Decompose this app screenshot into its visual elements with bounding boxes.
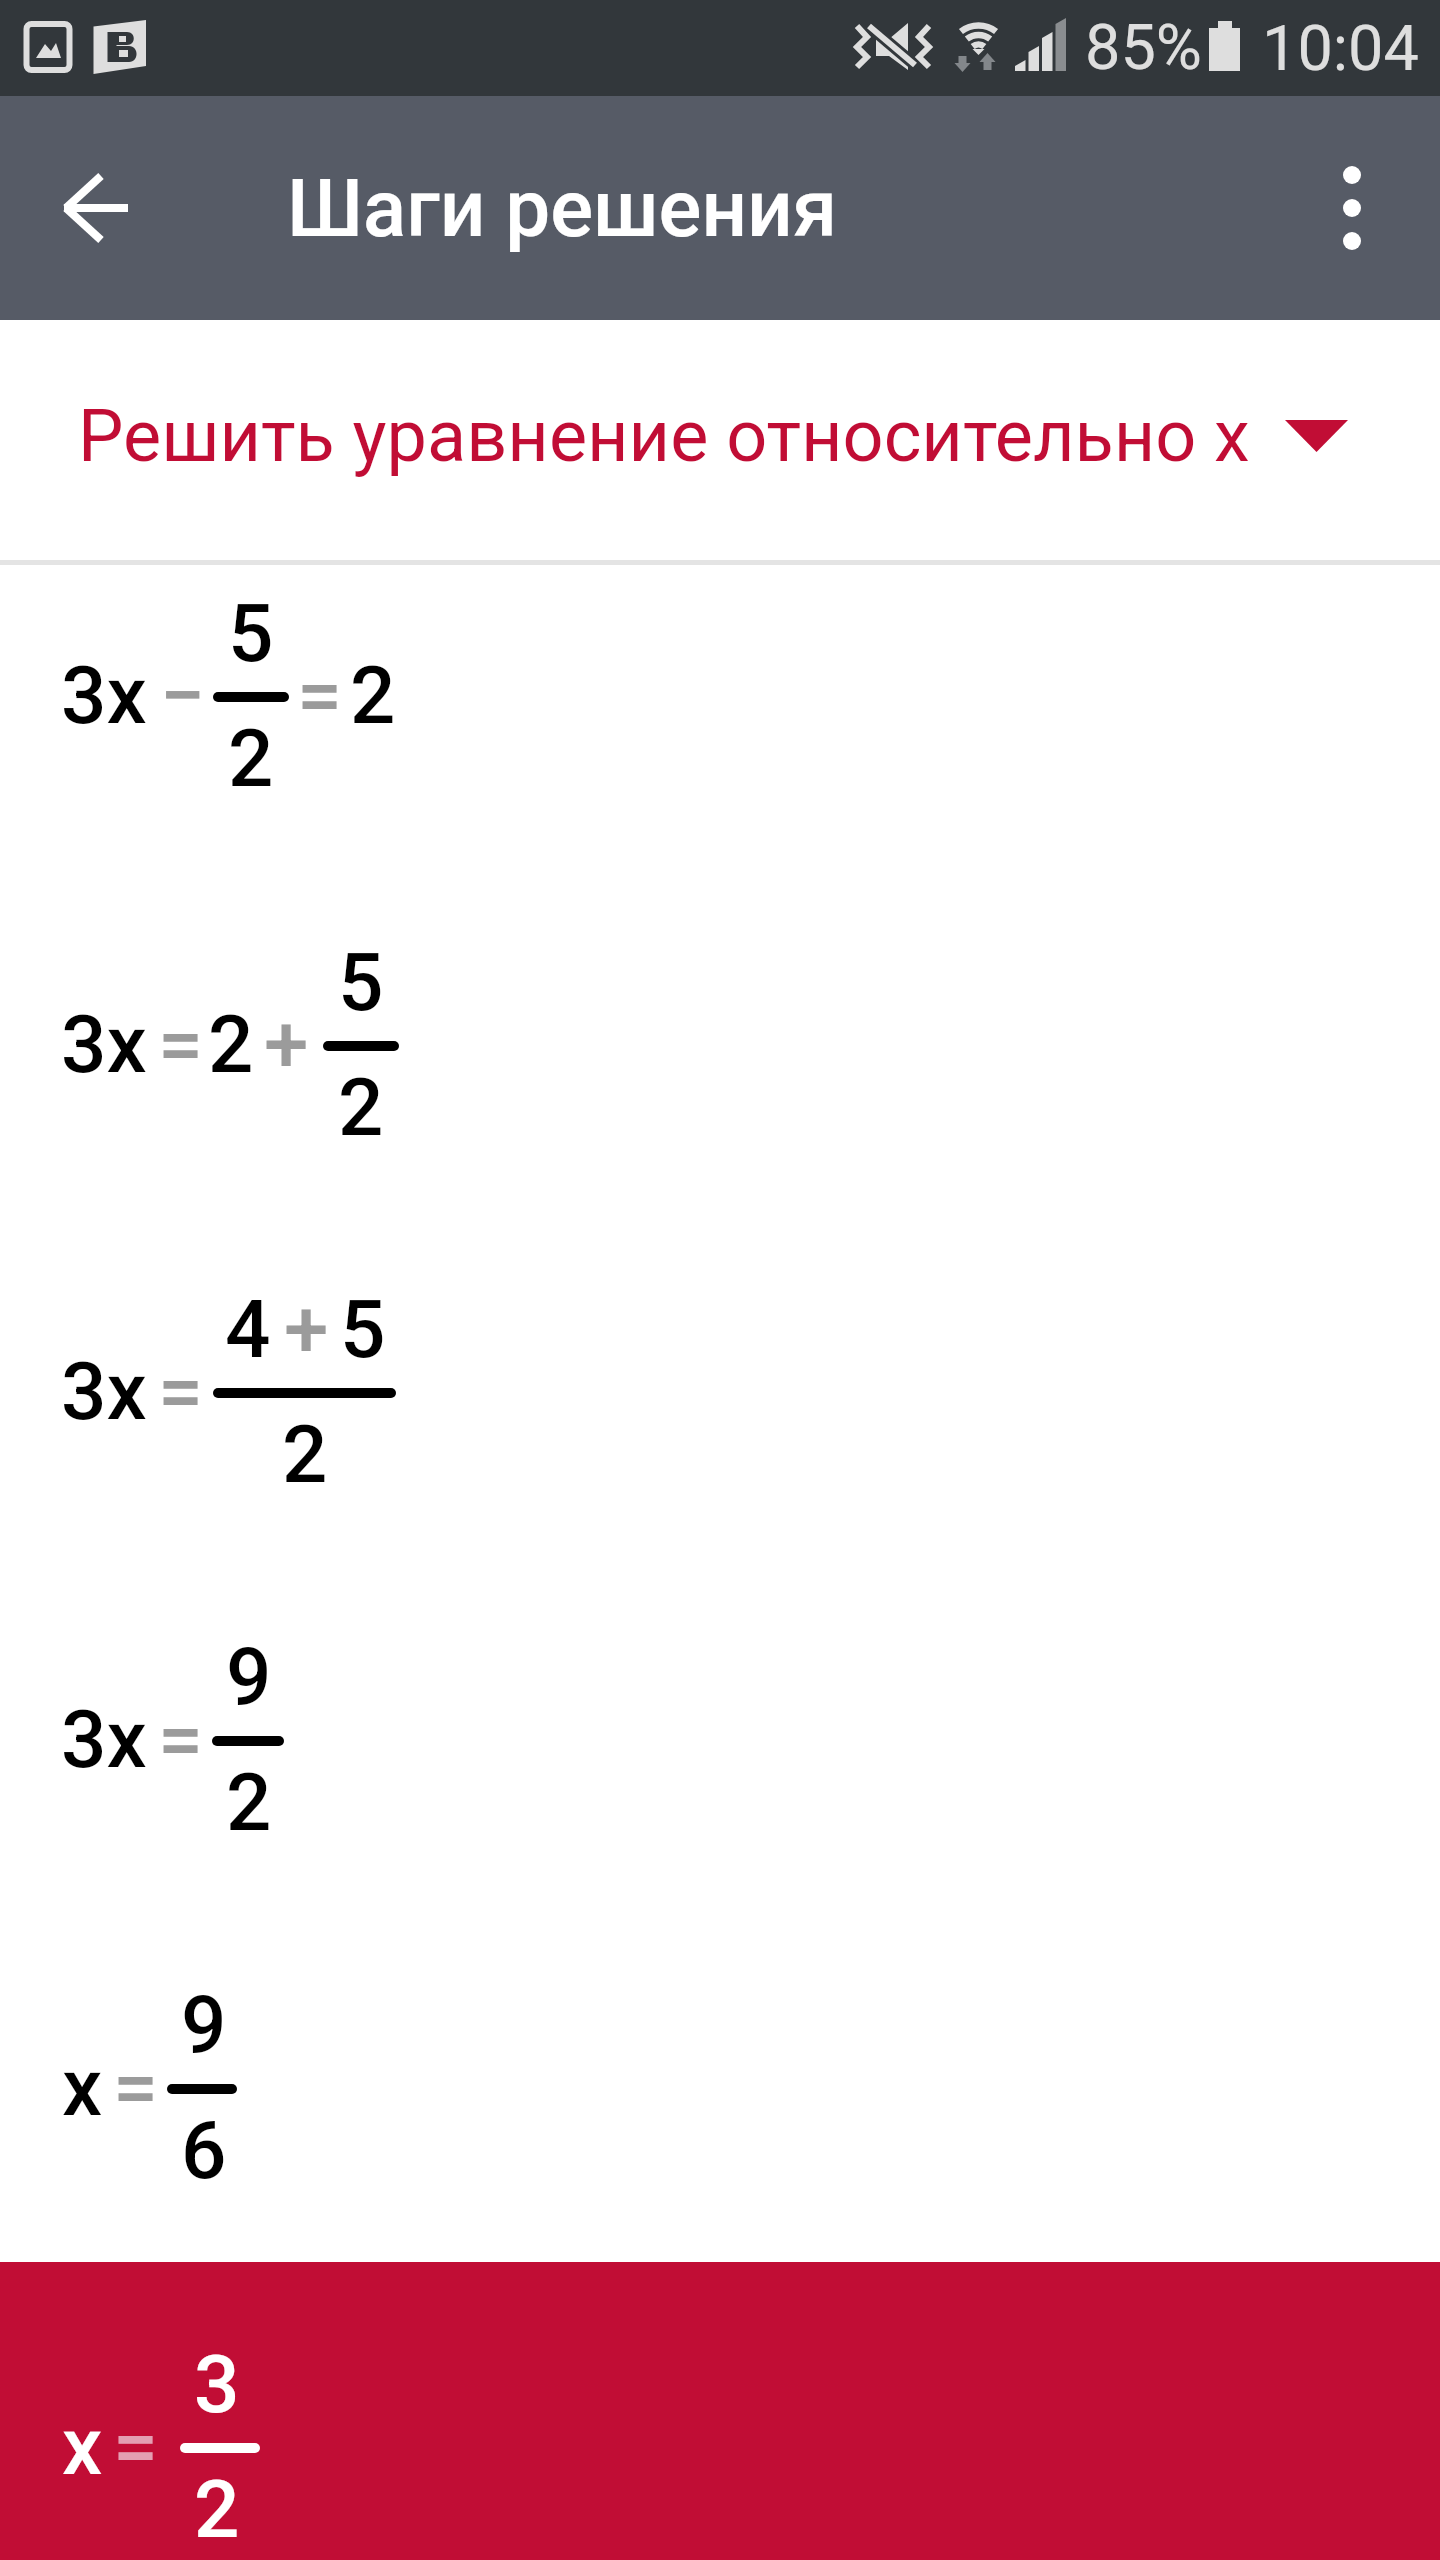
staticText: +	[284, 1283, 329, 1377]
staticText: =	[158, 1693, 203, 1787]
staticText: 3	[194, 2338, 240, 2432]
staticText: 5	[228, 587, 274, 681]
button[interactable]: Решить уравнение относительно x	[0, 320, 1440, 560]
staticText: 3x	[61, 998, 147, 1092]
button[interactable]: 3x	[0, 562, 1440, 910]
staticText: 9	[226, 1631, 272, 1725]
button[interactable]: 3x	[0, 1258, 1440, 1606]
staticText: 4	[225, 1283, 271, 1377]
staticText: 2	[350, 649, 396, 743]
button[interactable]: Back	[42, 152, 154, 264]
staticText: 6	[181, 2104, 227, 2198]
button[interactable]: 3x	[0, 910, 1440, 1258]
staticText: 2	[208, 998, 254, 1092]
staticText: =	[297, 649, 342, 743]
button[interactable]: More options	[1296, 152, 1408, 264]
staticText: 5	[338, 936, 384, 1030]
staticText: 10:04	[1262, 12, 1419, 86]
staticText: 5	[340, 1283, 386, 1377]
staticText: +	[264, 998, 309, 1092]
staticText: =	[113, 2041, 158, 2135]
staticText: 2	[226, 1756, 272, 1850]
staticText: 3x	[61, 1345, 147, 1439]
staticText: 2	[228, 712, 274, 806]
button[interactable]: 3x	[0, 1606, 1440, 1954]
staticText: =	[158, 998, 203, 1092]
staticText: x	[62, 2400, 103, 2494]
staticText: x	[62, 2041, 103, 2135]
staticText: 2	[338, 1061, 384, 1155]
staticText: 3x	[61, 649, 147, 743]
staticText: 9	[181, 1979, 227, 2073]
staticText: 85%	[1085, 11, 1202, 85]
staticText: =	[113, 2400, 158, 2494]
staticText: =	[158, 1345, 203, 1439]
button[interactable]: x	[0, 2262, 1440, 2560]
staticText: Решить уравнение относительно x	[78, 394, 1250, 478]
staticText: −	[160, 649, 205, 743]
staticText: 2	[194, 2463, 240, 2557]
staticText: 2	[282, 1408, 328, 1502]
staticText: Шаги решения	[287, 162, 838, 256]
staticText: 3x	[61, 1693, 147, 1787]
button[interactable]: x	[0, 1954, 1440, 2262]
